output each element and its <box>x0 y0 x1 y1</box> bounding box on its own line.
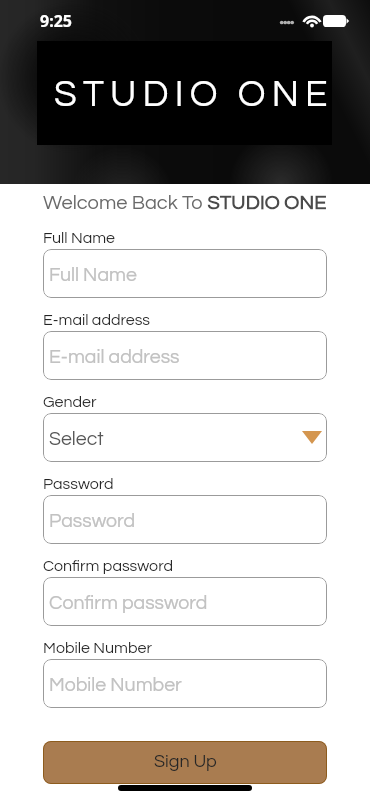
staticText: Full Name <box>49 265 137 285</box>
staticText: E-mail address <box>43 312 151 328</box>
button[interactable]: Confirm password <box>43 577 327 626</box>
staticText: Gender <box>43 394 97 410</box>
button[interactable]: Open Gender dropdown <box>302 431 322 444</box>
button[interactable]: E-mail address <box>43 331 327 380</box>
button[interactable]: Full Name <box>43 249 327 298</box>
staticText: Select <box>49 429 104 449</box>
staticText: Password <box>49 511 136 531</box>
staticText: 9:25 <box>40 10 72 32</box>
staticText: Mobile Number <box>49 675 182 695</box>
button[interactable]: Mobile Number <box>43 659 327 708</box>
button[interactable]: Password <box>43 495 327 544</box>
staticText: Sign Up <box>154 752 217 771</box>
staticText: Full Name <box>43 230 116 246</box>
staticText: E-mail address <box>49 347 180 367</box>
staticText: Confirm password <box>43 558 173 574</box>
button[interactable]: Select <box>43 413 327 462</box>
button[interactable]: Sign Up <box>43 741 327 784</box>
staticText: Welcome Back To STUDIO ONE <box>43 193 327 214</box>
staticText: Password <box>43 476 114 492</box>
staticText: Confirm password <box>49 593 208 613</box>
staticText: STUDIO ONE <box>54 76 334 114</box>
staticText: Mobile Number <box>43 640 152 656</box>
